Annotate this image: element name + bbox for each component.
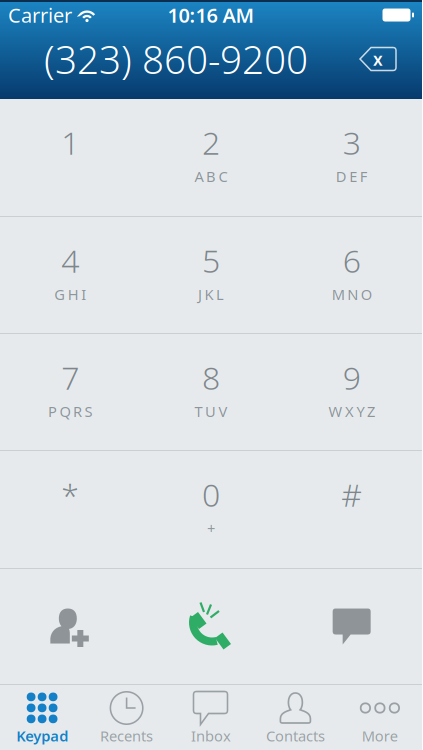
- button[interactable]: Recents: [84, 685, 169, 750]
- button[interactable]: Call: [141, 569, 281, 684]
- button[interactable]: Add contact: [0, 569, 141, 684]
- button[interactable]: Keypad: [0, 685, 84, 750]
- staticText: 3: [343, 121, 361, 163]
- staticText: MNO: [332, 284, 372, 304]
- button[interactable]: 5: [141, 217, 281, 333]
- staticText: 4: [61, 239, 79, 281]
- staticText: 7: [61, 356, 79, 398]
- staticText: 0: [202, 473, 220, 515]
- staticText: More: [362, 726, 398, 745]
- button[interactable]: 6: [281, 217, 422, 333]
- staticText: Inbox: [191, 726, 231, 745]
- staticText: 9: [343, 356, 361, 398]
- button[interactable]: 4: [0, 217, 141, 333]
- staticText: (323) 860-9200: [44, 33, 308, 85]
- button[interactable]: *: [0, 451, 141, 568]
- staticText: Contacts: [266, 726, 325, 745]
- button[interactable]: 0: [141, 451, 281, 568]
- staticText: 1: [61, 121, 79, 163]
- staticText: #: [341, 473, 362, 515]
- staticText: Recents: [100, 726, 153, 745]
- button[interactable]: 1: [0, 99, 141, 216]
- staticText: WXYZ: [328, 401, 375, 421]
- staticText: *: [61, 473, 79, 515]
- button[interactable]: Inbox: [169, 685, 253, 750]
- button[interactable]: Delete: [356, 46, 400, 71]
- button[interactable]: 8: [141, 334, 281, 450]
- staticText: 10:16 AM: [167, 2, 254, 28]
- staticText: 5: [202, 239, 220, 281]
- button[interactable]: #: [281, 451, 422, 568]
- staticText: JKL: [198, 284, 224, 304]
- staticText: x: [373, 47, 383, 70]
- button[interactable]: More: [338, 685, 422, 750]
- staticText: ABC: [194, 166, 227, 186]
- button[interactable]: 9: [281, 334, 422, 450]
- staticText: PQRS: [48, 401, 93, 421]
- staticText: Carrier: [8, 2, 72, 28]
- button[interactable]: 2: [141, 99, 281, 216]
- staticText: 6: [343, 239, 361, 281]
- button[interactable]: Message: [281, 569, 422, 684]
- button[interactable]: Contacts: [253, 685, 338, 750]
- staticText: 8: [202, 356, 220, 398]
- staticText: DEF: [336, 166, 368, 186]
- staticText: TUV: [194, 401, 227, 421]
- staticText: Keypad: [16, 726, 68, 745]
- staticText: GHI: [54, 284, 86, 304]
- staticText: 2: [202, 121, 220, 163]
- button[interactable]: 3: [281, 99, 422, 216]
- staticText: +: [207, 518, 215, 538]
- button[interactable]: 7: [0, 334, 141, 450]
